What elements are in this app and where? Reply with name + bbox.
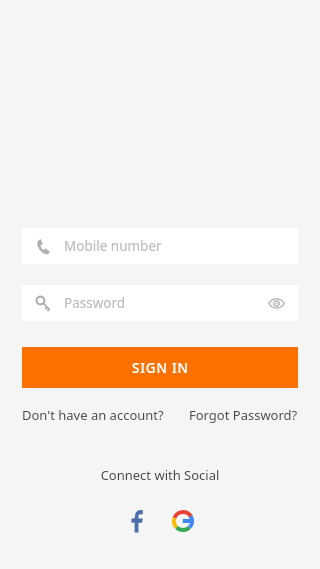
button[interactable]: SIGN IN (22, 347, 298, 388)
staticText: Connect with Social (0, 466, 320, 484)
staticText: SIGN IN (132, 359, 189, 377)
staticText: Forgot Password? (189, 406, 298, 424)
button[interactable]: Forgot Password? (189, 406, 298, 424)
button[interactable]: Password (22, 285, 298, 321)
staticText: Don't have an account? (22, 406, 164, 424)
staticText: Password (64, 294, 126, 312)
button[interactable]: Sign in with Facebook (120, 504, 154, 538)
staticText: Mobile number (64, 237, 162, 255)
button[interactable]: Sign in with Google (166, 504, 200, 538)
button[interactable]: Don't have an account? (22, 406, 164, 424)
button[interactable]: Mobile number (22, 228, 298, 264)
